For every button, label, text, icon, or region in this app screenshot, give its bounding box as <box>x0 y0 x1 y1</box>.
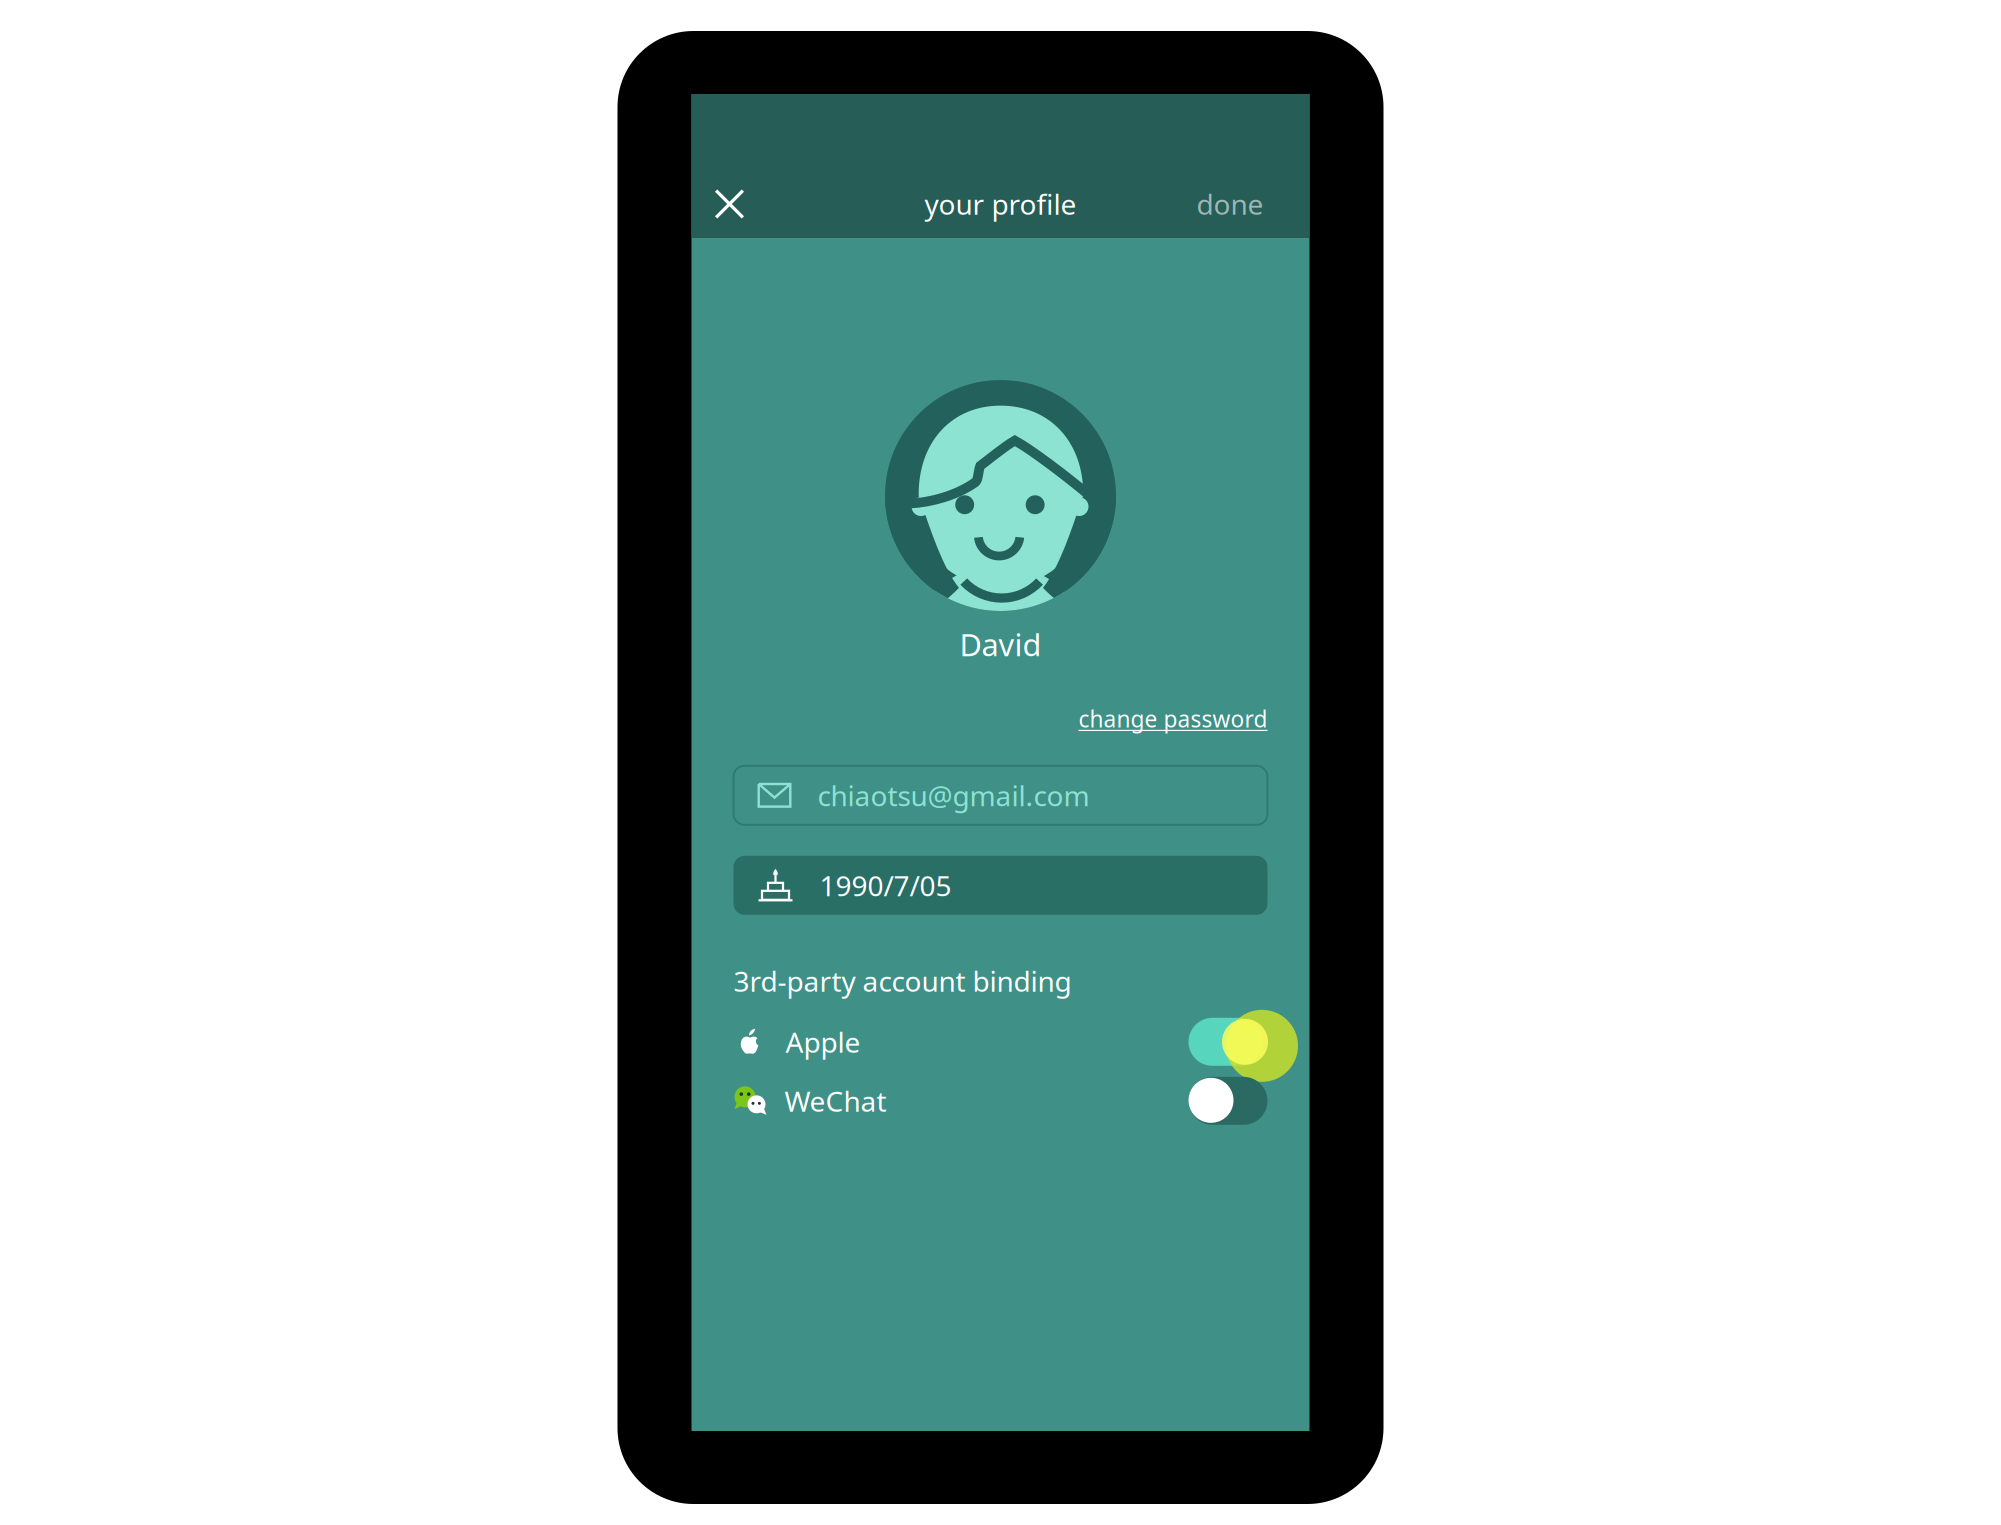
staticText: 3rd-party account binding <box>733 962 1071 999</box>
staticText: Apple <box>785 1023 860 1060</box>
button[interactable]: done <box>1183 176 1263 232</box>
staticText: WeChat <box>784 1082 886 1119</box>
staticText: 1990/7/05 <box>819 867 951 904</box>
staticText: chiaotsu@gmail.com <box>817 777 1089 814</box>
staticText: David <box>959 624 1041 665</box>
button[interactable]: change password <box>1078 704 1267 734</box>
staticText: done <box>1196 185 1263 223</box>
button[interactable]: Apple <box>733 1018 1267 1066</box>
staticText: your profile <box>924 185 1076 223</box>
button[interactable]: WeChat <box>733 1077 1267 1125</box>
button[interactable]: Close <box>714 176 770 232</box>
staticText: change password <box>1078 704 1267 734</box>
